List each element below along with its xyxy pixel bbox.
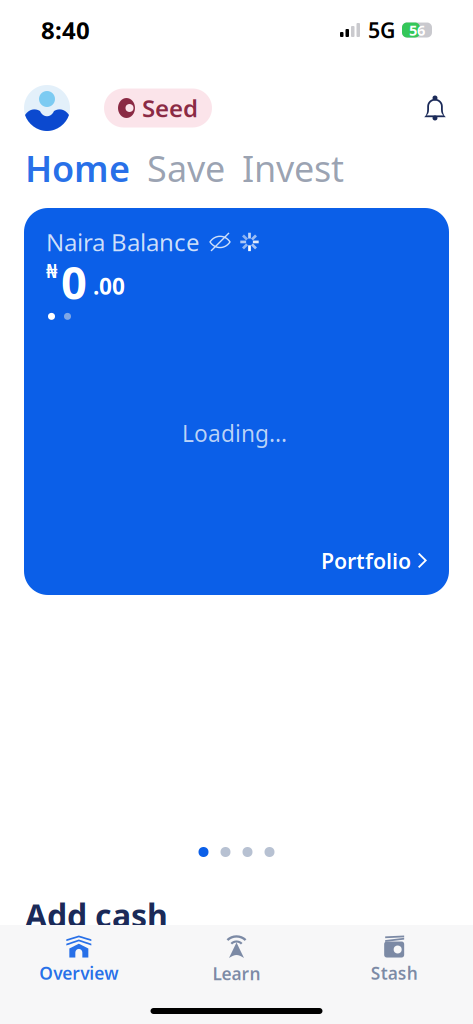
button[interactable]: Portfolio (321, 547, 427, 575)
staticText: Home (25, 144, 130, 192)
staticText: Loading... (182, 418, 287, 448)
staticText: Stash (371, 961, 418, 984)
button[interactable]: Invest (242, 144, 344, 192)
button[interactable]: Notifications (423, 96, 447, 120)
button[interactable]: Save (147, 144, 225, 192)
button[interactable]: Profile (24, 85, 70, 131)
button[interactable]: Home (25, 144, 130, 192)
button[interactable]: Overview (0, 935, 158, 984)
button[interactable]: Learn (158, 935, 315, 985)
staticText: Save (147, 144, 225, 192)
button[interactable]: Seed (104, 88, 212, 127)
staticText: Invest (242, 144, 344, 192)
staticText: 56 (409, 20, 425, 40)
staticText: 5G (368, 16, 395, 44)
staticText: Overview (39, 961, 118, 984)
staticText: Learn (212, 962, 260, 985)
staticText: Portfolio (321, 547, 411, 575)
staticText: Naira Balance (46, 226, 200, 258)
staticText: .00 (93, 271, 125, 301)
staticText: Add cash (25, 894, 168, 936)
staticText: ₦ (46, 257, 57, 283)
staticText: 8:40 (41, 14, 90, 46)
staticText: Seed (142, 92, 198, 124)
staticText: 0 (61, 252, 87, 312)
button[interactable]: Stash (315, 935, 473, 984)
